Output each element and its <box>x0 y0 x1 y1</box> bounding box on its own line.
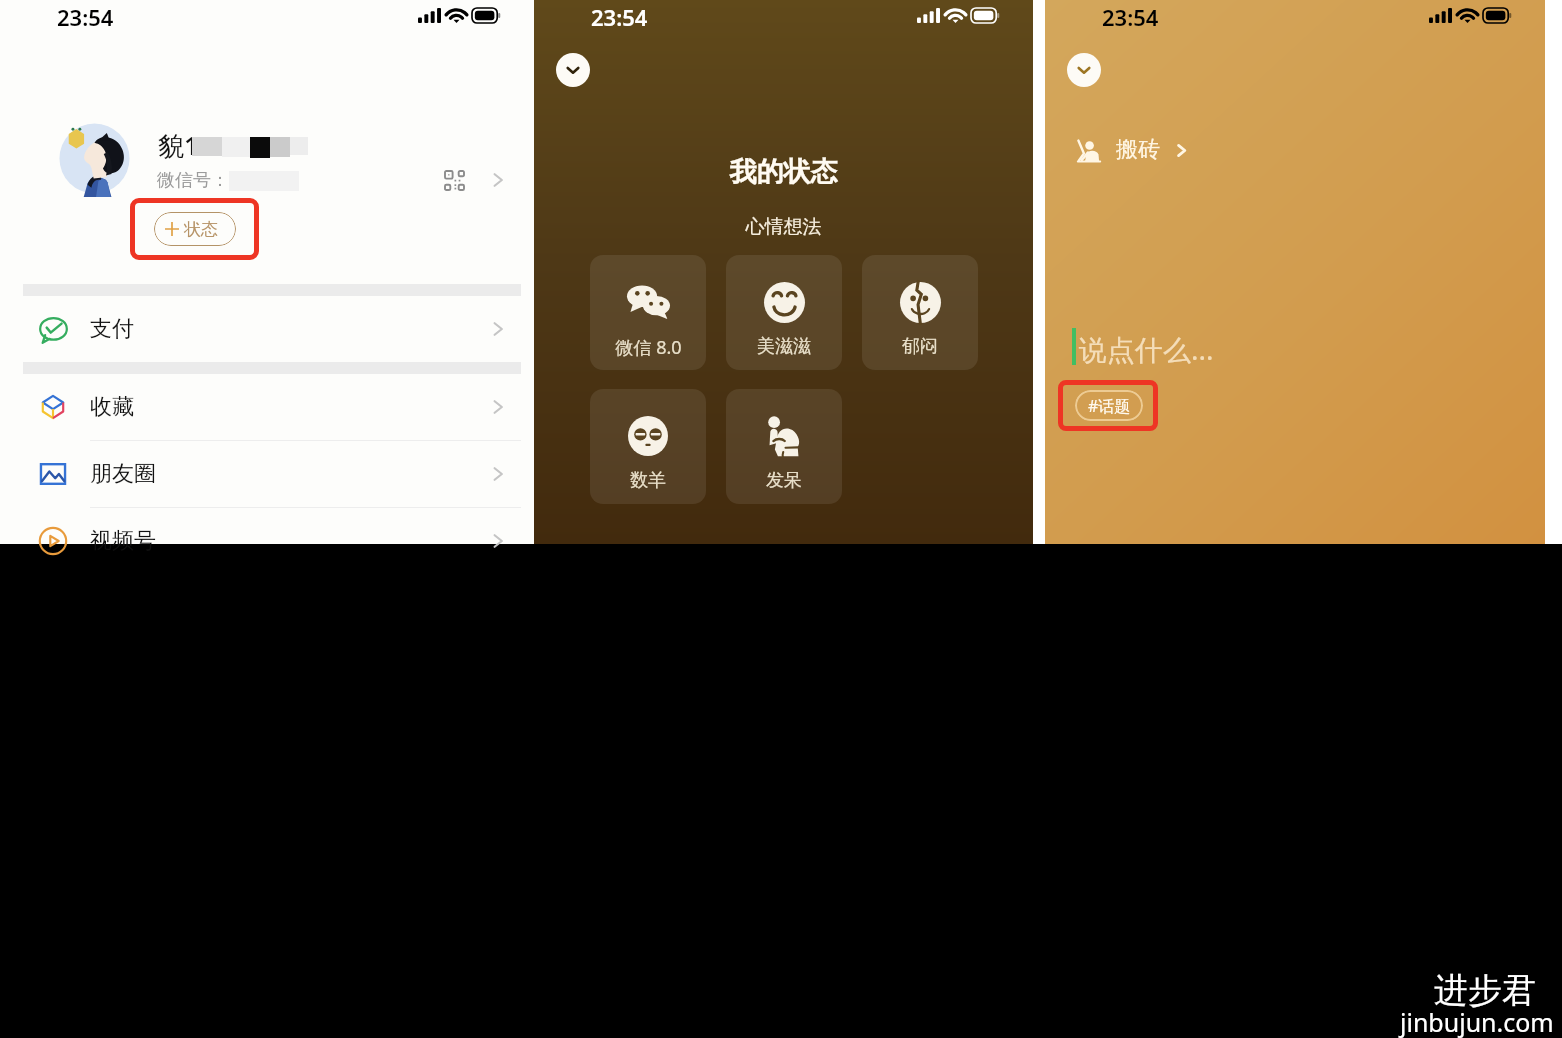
staticText: 貌1 <box>158 127 199 163</box>
button[interactable]: 美滋滋 <box>726 255 842 370</box>
staticText: 收藏 <box>90 393 134 421</box>
staticText: 朋友圈 <box>90 460 156 488</box>
staticText: 发呆 <box>766 469 802 492</box>
staticText: 美滋滋 <box>757 335 811 358</box>
staticText: 支付 <box>90 315 134 343</box>
staticText: 状态 <box>184 219 218 240</box>
button[interactable]: Close <box>1067 53 1101 87</box>
button[interactable]: 搬砖 <box>1071 132 1196 168</box>
button[interactable]: Close <box>556 53 590 87</box>
button[interactable]: 微信 8.0 <box>590 255 706 370</box>
staticText: 心情想法 <box>534 215 1033 239</box>
button[interactable]: 支付 <box>0 296 534 362</box>
staticText: 微信 8.0 <box>615 335 682 360</box>
staticText: 23:54 <box>57 2 114 32</box>
button[interactable]: 收藏 <box>0 374 534 440</box>
staticText: 视频号 <box>90 527 156 555</box>
staticText: 23:54 <box>1102 2 1159 32</box>
button[interactable]: 视频号 <box>0 508 534 574</box>
button[interactable]: 发呆 <box>726 389 842 504</box>
staticText: 23:54 <box>591 2 648 32</box>
staticText: 进步君 <box>1434 969 1536 1012</box>
button[interactable]: 郁闷 <box>862 255 978 370</box>
staticText: #话题 <box>1088 395 1131 417</box>
button[interactable]: Profile photo <box>56 120 133 197</box>
button[interactable]: My QR code <box>440 166 468 194</box>
staticText: 数羊 <box>630 469 666 492</box>
button[interactable]: 朋友圈 <box>0 441 534 507</box>
staticText: 搬砖 <box>1116 136 1160 164</box>
staticText: 郁闷 <box>902 335 938 358</box>
staticText: 微信号： <box>157 169 229 192</box>
button[interactable]: #话题 <box>1075 390 1143 421</box>
button[interactable]: 数羊 <box>590 389 706 504</box>
staticText: 我的状态 <box>534 155 1033 189</box>
staticText: jinbujun.com <box>1400 1005 1554 1038</box>
button[interactable]: 状态 <box>154 212 236 246</box>
button[interactable]: Open personal info <box>486 168 510 192</box>
staticText: 说点什么... <box>1079 330 1214 368</box>
